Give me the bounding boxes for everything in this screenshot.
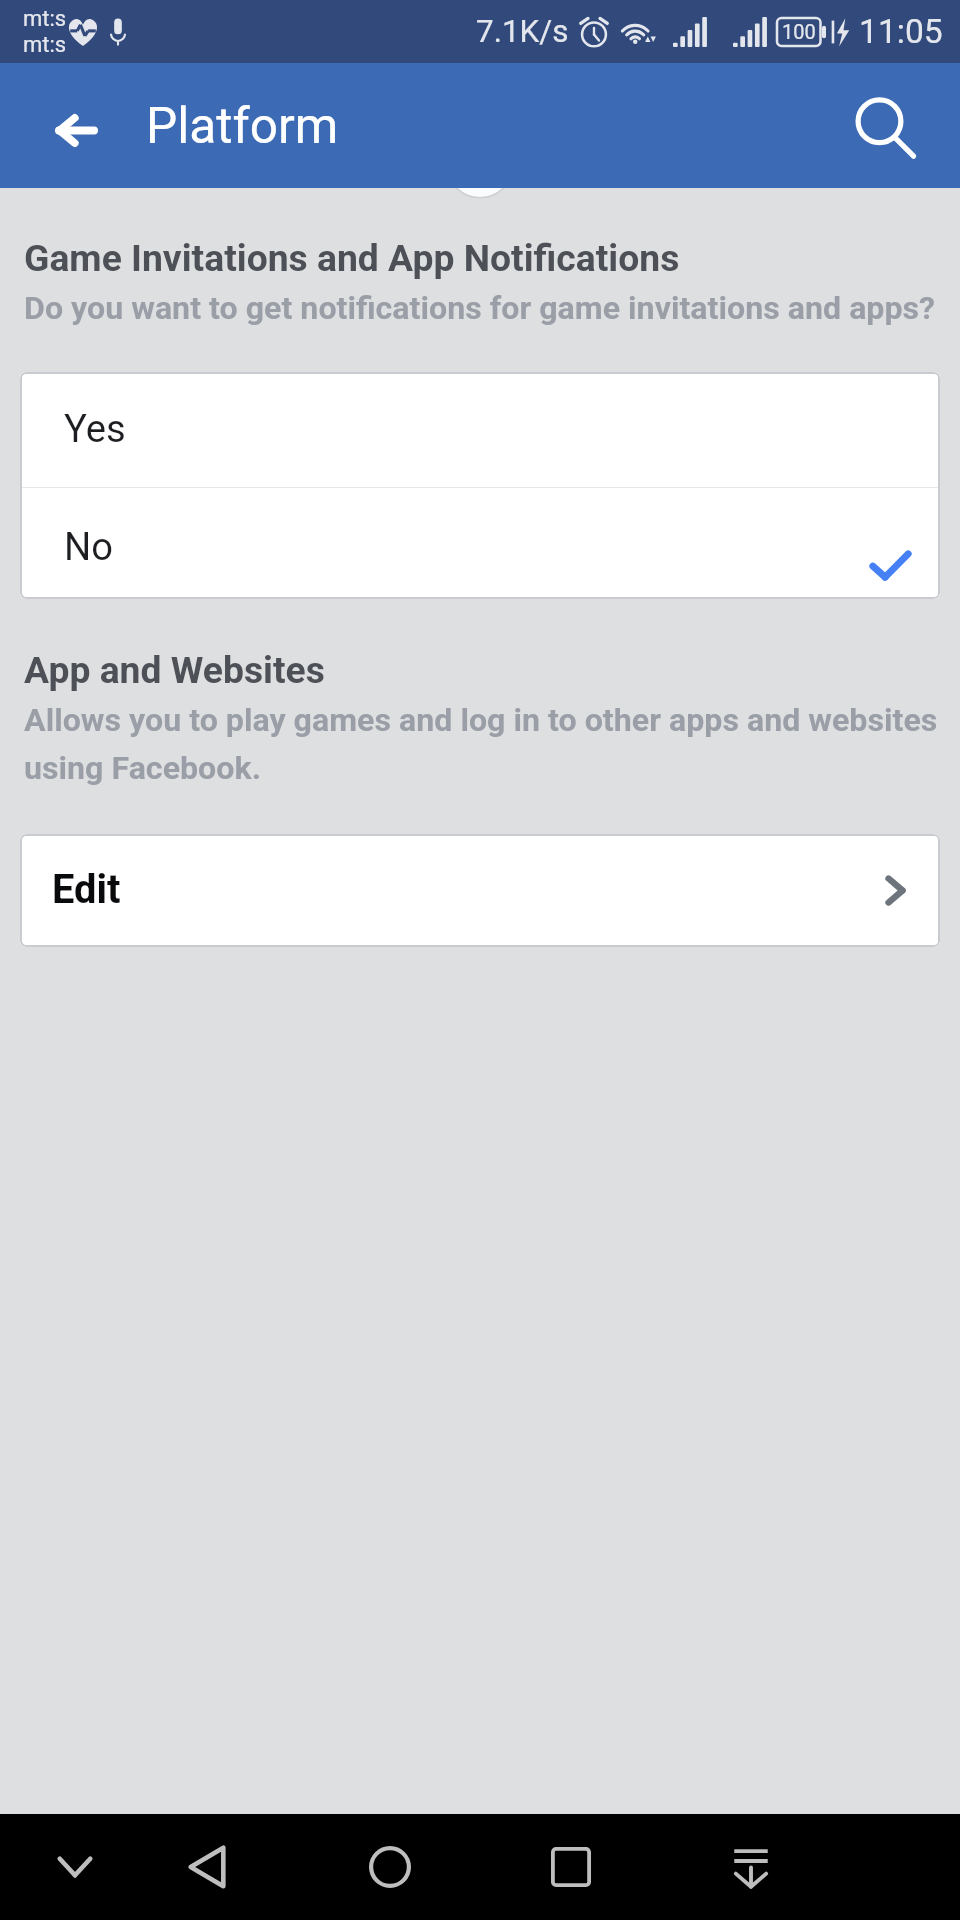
- button[interactable]: Yes: [20, 372, 940, 487]
- staticText: No: [64, 525, 113, 570]
- staticText: 100: [782, 20, 816, 43]
- staticText: Edit: [52, 866, 121, 913]
- staticText: Do you want to get notifications for gam…: [24, 281, 936, 329]
- button[interactable]: Search: [811, 63, 960, 188]
- staticText: App and Websites: [24, 645, 325, 693]
- button[interactable]: Recents: [511, 1814, 631, 1920]
- button[interactable]: Download: [689, 1814, 813, 1920]
- button[interactable]: Edit: [20, 834, 940, 947]
- button[interactable]: Back: [147, 1814, 267, 1920]
- staticText: 11:05: [859, 12, 943, 51]
- button[interactable]: Back: [0, 63, 146, 188]
- staticText: Allows you to play games and log in to o…: [24, 693, 944, 789]
- staticText: Platform: [146, 97, 339, 155]
- staticText: mt:s: [23, 6, 67, 32]
- button[interactable]: Hide keyboard: [19, 1814, 131, 1920]
- staticText: mt:s: [23, 32, 67, 58]
- button[interactable]: Home: [328, 1814, 452, 1920]
- staticText: Yes: [64, 407, 126, 452]
- staticText: 7.1K/s: [476, 13, 569, 50]
- button[interactable]: No: [20, 488, 940, 599]
- staticText: Game Invitations and App Notifications: [24, 233, 680, 281]
